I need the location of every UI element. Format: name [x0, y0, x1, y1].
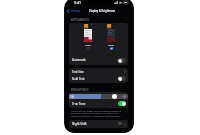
- button[interactable]: True Tone: [69, 100, 128, 107]
- staticText: 9:41: [74, 0, 81, 5]
- button[interactable]: Bold Text: [69, 75, 128, 82]
- button[interactable]: Dark: [106, 24, 116, 50]
- button[interactable]: On: [118, 101, 126, 106]
- staticText: Night Shift: [72, 122, 87, 126]
- staticText: Text Size: [72, 70, 84, 74]
- staticText: Dark: [108, 43, 114, 46]
- staticText: APPEARANCE: [71, 18, 90, 22]
- button[interactable]: Off: [118, 76, 126, 81]
- staticText: Off: [118, 122, 123, 126]
- staticText: True Tone: [72, 102, 86, 106]
- button[interactable]: Back: [65, 8, 81, 14]
- staticText: Light: [85, 43, 91, 46]
- button[interactable]: Automatic: [69, 55, 128, 65]
- staticText: BRIGHTNESS: [71, 88, 89, 92]
- staticText: Bold Text: [72, 77, 85, 81]
- button[interactable]: Light: [83, 24, 93, 50]
- other: Back: [67, 9, 69, 13]
- staticText: Settings: [70, 9, 80, 13]
- button[interactable]: Text Size: [69, 68, 128, 75]
- button[interactable]: Off: [118, 58, 126, 63]
- staticText: Automatic: [72, 58, 86, 62]
- button[interactable]: Night Shift: [69, 120, 128, 128]
- staticText: Display & Brightness: [89, 9, 116, 13]
- staticText: Automatically adapt iPhone display based…: [71, 109, 127, 118]
